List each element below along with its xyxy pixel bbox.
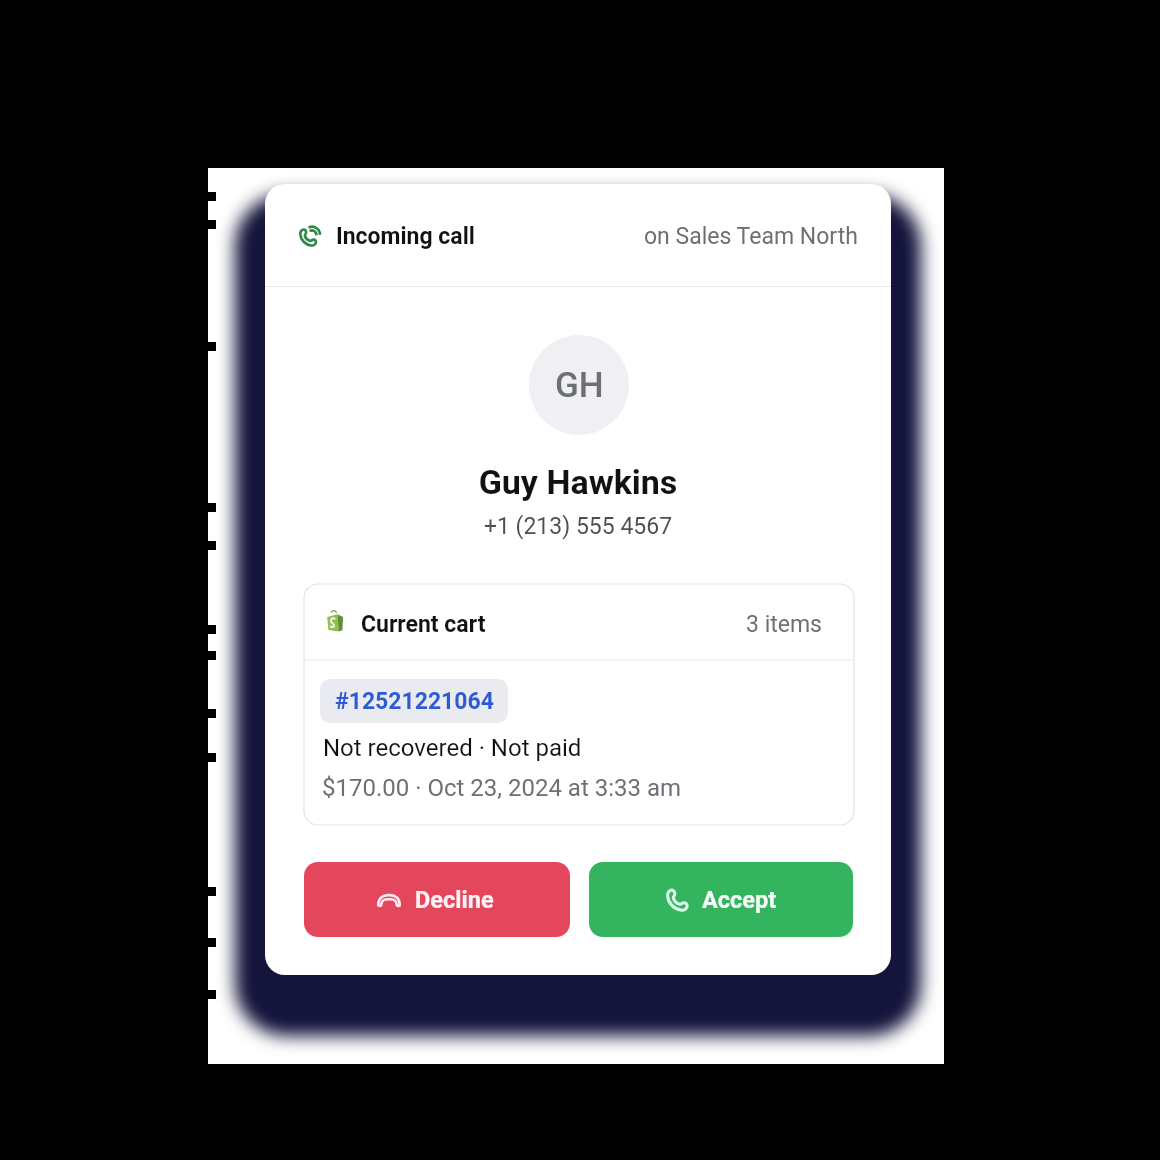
staticText: Guy Hawkins [265, 462, 891, 502]
staticText: $170.00 · Oct 23, 2024 at 3:33 am [322, 774, 682, 802]
button[interactable]: Accept [589, 862, 853, 937]
other: Incoming call [299, 224, 322, 247]
staticText: Decline [415, 886, 494, 914]
staticText: GH [555, 365, 604, 406]
staticText: Accept [702, 886, 777, 914]
staticText: Not recovered · Not paid [323, 734, 582, 762]
staticText: 3 items [746, 611, 822, 638]
staticText: on Sales Team North [644, 223, 858, 250]
staticText: Current cart [361, 611, 486, 638]
staticText: +1 (213) 555 4567 [265, 513, 891, 540]
staticText: Incoming call [336, 223, 475, 250]
staticText: #12521221064 [335, 688, 508, 715]
button[interactable]: Decline [304, 862, 570, 937]
